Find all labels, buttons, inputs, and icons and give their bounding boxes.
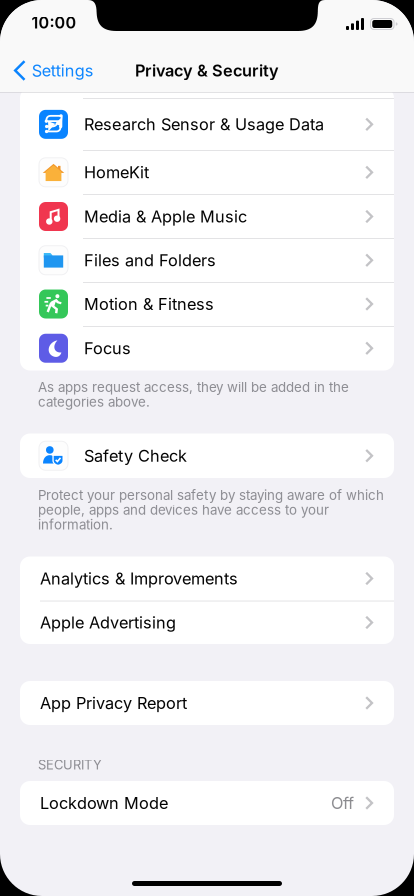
- staticText: Off: [331, 793, 354, 813]
- button[interactable]: Safety Check: [20, 433, 394, 478]
- staticText: Files and Folders: [84, 250, 216, 270]
- staticText: Media & Apple Music: [84, 207, 247, 226]
- staticText: 10:00: [31, 13, 76, 32]
- staticText: Safety Check: [84, 446, 187, 466]
- button[interactable]: Lockdown Mode: [20, 781, 394, 825]
- staticText: Settings: [32, 61, 94, 80]
- staticText: Focus: [84, 338, 131, 358]
- staticText: As apps request access, they will be add…: [38, 379, 349, 395]
- staticText: Research Sensor & Usage Data: [84, 114, 324, 134]
- button[interactable]: HomeKit: [20, 150, 394, 194]
- button[interactable]: Motion & Fitness: [20, 282, 394, 326]
- button[interactable]: App Privacy Report: [20, 681, 394, 725]
- staticText: people, apps and devices have access to …: [38, 502, 329, 518]
- staticText: categories above.: [38, 394, 150, 410]
- staticText: SECURITY: [38, 757, 102, 773]
- staticText: Lockdown Mode: [40, 793, 168, 813]
- staticText: Motion & Fitness: [84, 294, 214, 314]
- staticText: Privacy & Security: [135, 61, 279, 80]
- button[interactable]: Analytics & Improvements: [20, 556, 394, 600]
- staticText: Apple Advertising: [40, 613, 176, 632]
- staticText: information.: [38, 517, 113, 533]
- button[interactable]: Media & Apple Music: [20, 194, 394, 238]
- button[interactable]: Research Sensor & Usage Data: [20, 98, 394, 150]
- staticText: Protect your personal safety by staying …: [38, 487, 384, 503]
- button[interactable]: Focus: [20, 326, 394, 370]
- button[interactable]: Settings: [13, 59, 94, 81]
- button[interactable]: Files and Folders: [20, 238, 394, 282]
- staticText: Analytics & Improvements: [40, 569, 238, 588]
- button[interactable]: Apple Advertising: [20, 600, 394, 644]
- staticText: HomeKit: [84, 162, 149, 182]
- staticText: App Privacy Report: [40, 693, 187, 713]
